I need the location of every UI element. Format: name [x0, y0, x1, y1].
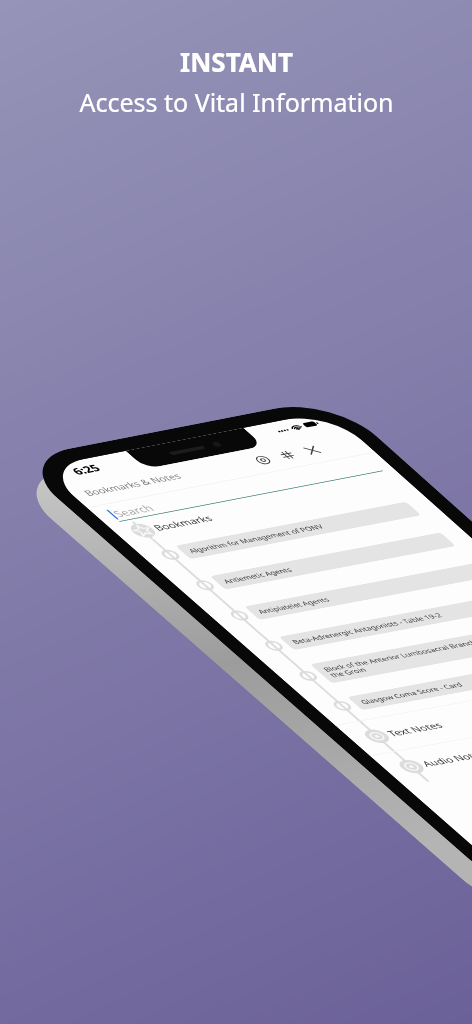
button[interactable]: Filter: [265, 444, 309, 466]
staticText: INSTANT: [180, 44, 293, 79]
button[interactable]: Antiplatelet Agents: [244, 563, 472, 620]
staticText: 6:25: [67, 461, 104, 477]
button[interactable]: Close: [290, 439, 334, 461]
staticText: Antiplatelet Agents: [255, 595, 332, 615]
staticText: Glasgow Coma Score - Card: [357, 680, 465, 706]
staticText: Bookmarks: [150, 513, 216, 533]
button[interactable]: Algorithm for Management of PONV: [175, 501, 421, 559]
button[interactable]: Antiemetic Agents: [210, 532, 456, 590]
staticText: Algorithm for Management of PONV: [185, 522, 327, 555]
staticText: Bookmarks & Notes: [80, 470, 185, 498]
staticText: Search: [109, 502, 158, 519]
staticText: Access to Vital Information: [79, 85, 394, 119]
staticText: Block of the Anterior Lumbosacral Branch…: [320, 635, 472, 679]
button[interactable]: Block of the Anterior Lumbosacral Branch…: [310, 621, 472, 683]
staticText: Antiemetic Agents: [220, 565, 295, 585]
button[interactable]: Record: [240, 449, 284, 471]
staticText: Text Notes: [384, 720, 446, 739]
button[interactable]: Beta-Adrenergic Antagonists - Table 19-2: [278, 594, 472, 650]
button[interactable]: Glasgow Coma Score - Card: [347, 654, 472, 710]
staticText: Audio Notes: [418, 749, 472, 769]
staticText: Beta-Adrenergic Antagonists - Table 19-2: [289, 611, 445, 646]
